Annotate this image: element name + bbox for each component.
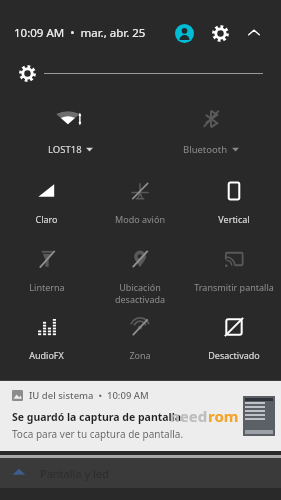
- staticText: Linterna: [29, 281, 65, 293]
- button[interactable]: Pantalla y led: [0, 458, 281, 488]
- staticText: IU del sistema • 10:09 AM: [29, 389, 149, 402]
- button[interactable]: Transmitir pantalla: [187, 238, 281, 306]
- staticText: Modo avión: [115, 213, 165, 225]
- staticText: Toca para ver tu captura de pantalla.: [12, 427, 184, 441]
- button[interactable]: Ubicación desactivada: [93, 238, 187, 306]
- staticText: need: [170, 406, 208, 426]
- staticText: rom: [208, 406, 239, 426]
- button[interactable]: Collapse: [239, 18, 269, 48]
- staticText: Zona: [129, 349, 151, 361]
- button[interactable]: Zona: [93, 306, 187, 374]
- button[interactable]: IU del sistema • 10:09 AM: [0, 381, 281, 451]
- staticText: Claro: [35, 213, 58, 225]
- button[interactable]: Vertical: [187, 170, 281, 238]
- button[interactable]: Desactivado: [187, 306, 281, 374]
- staticText: Se guardó la captura de pantalla.: [12, 410, 185, 424]
- staticText: Desactivado: [208, 349, 260, 361]
- button[interactable]: Brightness: [14, 60, 40, 86]
- button[interactable]: Bluetooth: [140, 102, 281, 160]
- staticText: 10:09 AM • mar., abr. 25: [14, 25, 146, 41]
- staticText: LOST18: [48, 143, 82, 156]
- button[interactable]: Settings: [205, 18, 235, 48]
- staticText: Bluetooth: [183, 143, 228, 156]
- staticText: Pantalla y led: [40, 466, 109, 481]
- staticText: Transmitir pantalla: [194, 281, 274, 293]
- button[interactable]: Modo avión: [93, 170, 187, 238]
- button[interactable]: AudioFX: [0, 306, 93, 374]
- staticText: Vertical: [218, 213, 250, 225]
- staticText: Ubicación desactivada: [95, 281, 185, 305]
- button[interactable]: User: [169, 18, 199, 48]
- button[interactable]: LOST18: [0, 102, 140, 160]
- staticText: AudioFX: [29, 349, 64, 361]
- button[interactable]: Claro: [0, 170, 93, 238]
- button[interactable]: Linterna: [0, 238, 93, 306]
